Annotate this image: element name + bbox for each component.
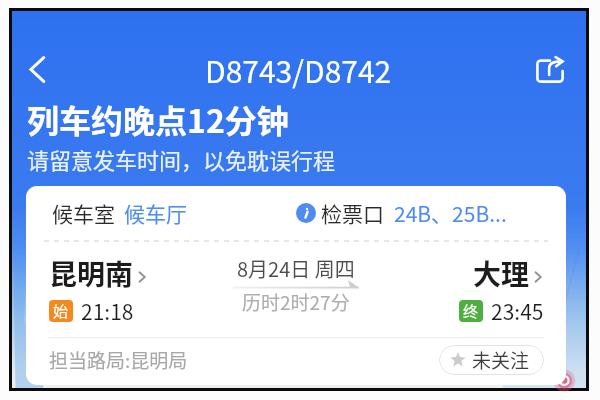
button[interactable]: Share — [514, 47, 586, 91]
button[interactable]: Back — [12, 47, 61, 91]
staticText: 24B、25B... — [394, 198, 507, 228]
staticText: 未关注 — [472, 346, 530, 374]
button[interactable]: 候车室 — [52, 186, 296, 240]
staticText: 8月24日 周四 — [237, 254, 355, 283]
staticText: 请留意发车时间，以免耽误行程 — [27, 143, 336, 175]
button[interactable]: 未关注 — [439, 345, 544, 375]
staticText: 担当路局:昆明局 — [49, 346, 188, 374]
button[interactable]: 昆明南 — [49, 253, 148, 326]
staticText: 终 — [463, 300, 479, 322]
staticText: 23:45 — [491, 296, 544, 326]
staticText: 检票口 — [321, 198, 384, 228]
button[interactable]: 大理 — [459, 253, 544, 326]
staticText: 历时2时27分 — [242, 288, 350, 316]
staticText: 大理 — [473, 253, 530, 294]
button[interactable]: 检票口 — [296, 186, 566, 240]
staticText: 列车约晚点12分钟 — [27, 96, 289, 142]
staticText: 候车室 — [52, 198, 115, 228]
staticText: 始 — [53, 300, 69, 322]
staticText: D8743/D8742 — [205, 48, 392, 91]
staticText: 候车厅 — [124, 198, 187, 228]
staticText: 昆明南 — [49, 253, 134, 294]
staticText: 21:18 — [81, 296, 134, 326]
